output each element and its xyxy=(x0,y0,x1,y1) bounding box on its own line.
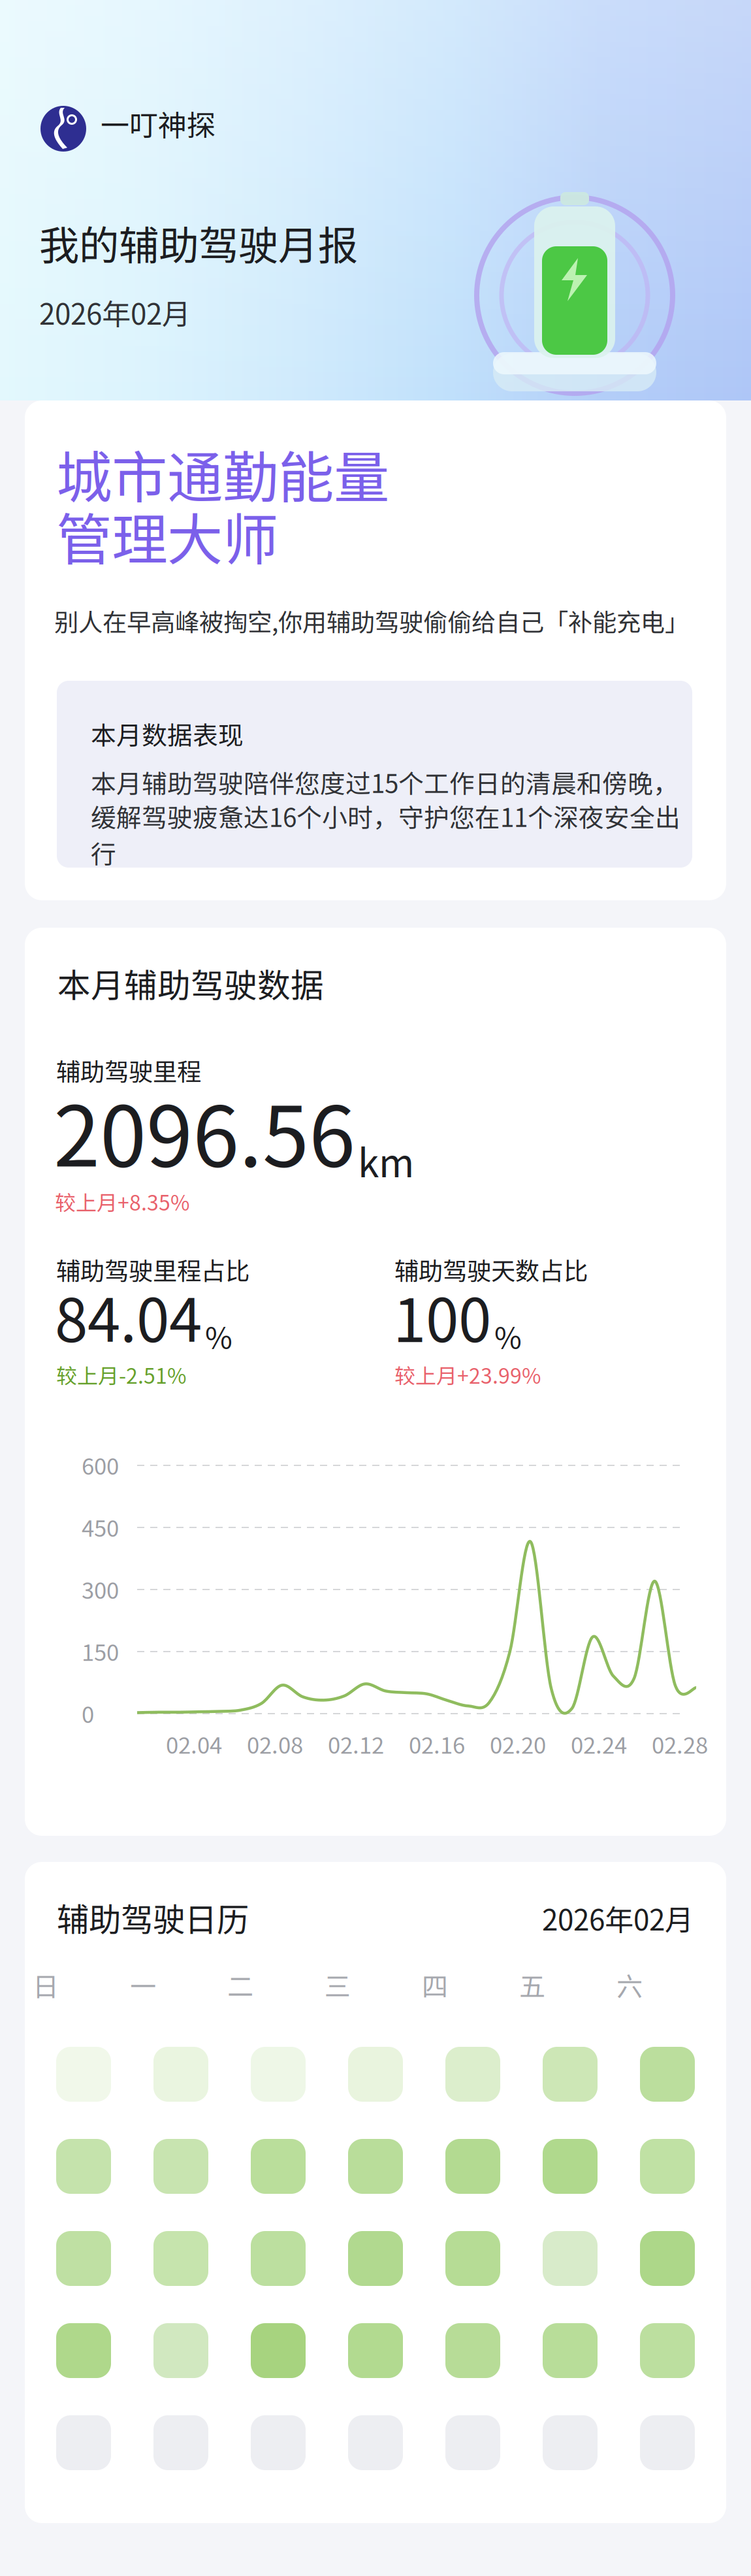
staticText: 2096.56 xyxy=(54,1069,355,1191)
staticText: 别人在早高峰被掏空,你用辅助驾驶偷偷给自己「补能充电」 xyxy=(54,603,689,638)
staticText: % xyxy=(494,1314,522,1357)
staticText: 我的辅助驾驶月报 xyxy=(39,214,358,272)
staticText: 84.04 xyxy=(55,1273,202,1359)
staticText: 02.28 xyxy=(652,1727,708,1760)
staticText: 100 xyxy=(393,1273,491,1359)
staticText: 辅助驾驶天数占比 xyxy=(394,1252,588,1287)
staticText: 2026年02月 xyxy=(542,1897,694,1939)
staticText: 本月辅助驾驶陪伴您度过15个工作日的清晨和傍晚， xyxy=(91,764,679,800)
staticText: 02.04 xyxy=(166,1727,222,1760)
staticText: 0 xyxy=(82,1697,94,1729)
staticText: 六 xyxy=(616,1966,643,2004)
staticText: 300 xyxy=(82,1573,119,1605)
staticText: 五 xyxy=(519,1966,545,2004)
staticText: km xyxy=(358,1133,414,1188)
staticText: 三 xyxy=(325,1966,351,2004)
staticText: 较上月-2.51% xyxy=(56,1360,186,1390)
staticText: 450 xyxy=(82,1510,119,1543)
staticText: 02.24 xyxy=(571,1727,627,1760)
staticText: 一 xyxy=(130,1966,156,2004)
staticText: 600 xyxy=(82,1448,119,1481)
staticText: 缓解驾驶疲惫达16个小时，守护您在11个深夜安全出行 xyxy=(91,798,680,871)
staticText: 本月辅助驾驶数据 xyxy=(57,959,324,1007)
staticText: 辅助驾驶里程占比 xyxy=(56,1252,249,1287)
staticText: 02.08 xyxy=(247,1727,303,1760)
staticText: 管理大师 xyxy=(56,495,278,576)
staticText: 较上月+23.99% xyxy=(394,1360,541,1390)
staticText: 2026年02月 xyxy=(39,291,191,333)
staticText: 较上月+8.35% xyxy=(55,1186,189,1217)
staticText: 150 xyxy=(82,1635,119,1667)
staticText: 02.16 xyxy=(409,1727,465,1760)
staticText: 日 xyxy=(33,1966,59,2004)
staticText: 辅助驾驶日历 xyxy=(57,1894,249,1941)
staticText: 辅助驾驶里程 xyxy=(56,1052,201,1088)
staticText: 城市通勤能量 xyxy=(56,433,389,514)
staticText: 本月数据表现 xyxy=(91,715,244,752)
staticText: % xyxy=(205,1314,232,1357)
staticText: 四 xyxy=(422,1966,448,2004)
staticText: 二 xyxy=(227,1966,253,2004)
staticText: 一叮神探 xyxy=(101,103,216,144)
staticText: 02.20 xyxy=(490,1727,546,1760)
staticText: 02.12 xyxy=(328,1727,384,1760)
